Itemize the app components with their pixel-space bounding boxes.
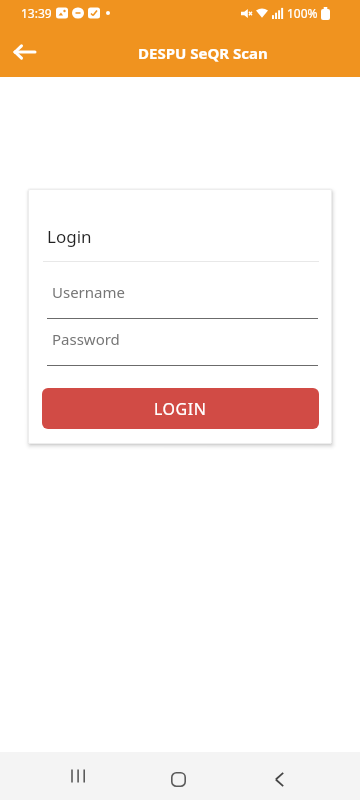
button[interactable]: Password (47, 326, 318, 366)
staticText: LOGIN (154, 398, 207, 420)
staticText: Login (47, 225, 92, 248)
staticText: Username (52, 282, 125, 302)
button[interactable] (62, 760, 94, 792)
staticText: DESPU SeQR Scan (138, 43, 268, 63)
button[interactable]: Username (47, 279, 318, 319)
button[interactable]: LOGIN (42, 388, 319, 429)
staticText: 100% (287, 5, 318, 21)
staticText: Password (52, 329, 120, 349)
button[interactable] (8, 36, 40, 68)
staticText: 13:39 (21, 5, 52, 21)
button[interactable] (162, 763, 194, 795)
button[interactable] (263, 763, 295, 795)
